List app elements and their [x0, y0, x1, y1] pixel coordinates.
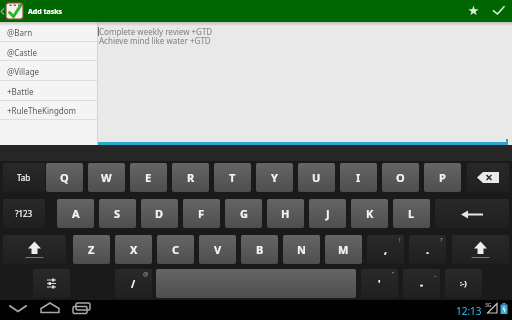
- staticText: :-): [460, 279, 467, 289]
- button[interactable]: D: [141, 199, 178, 228]
- button[interactable]: [156, 269, 356, 298]
- staticText: L: [408, 206, 415, 221]
- button[interactable]: @Village: [0, 61, 98, 81]
- staticText: D: [155, 206, 164, 221]
- staticText: ?: [440, 236, 443, 244]
- staticText: !: [399, 236, 401, 244]
- staticText: I: [356, 170, 361, 185]
- button[interactable]: +RuleTheKingdom: [0, 100, 98, 120]
- button[interactable]: [3, 235, 66, 264]
- button[interactable]: H: [267, 199, 304, 228]
- button[interactable]: I: [340, 163, 377, 192]
- button[interactable]: P: [424, 163, 461, 192]
- staticText: N: [297, 242, 306, 257]
- button[interactable]: .: [409, 235, 446, 264]
- staticText: H: [281, 206, 290, 221]
- staticText: ?123: [15, 208, 33, 219]
- button[interactable]: Y: [256, 163, 293, 192]
- button[interactable]: T: [214, 163, 251, 192]
- button[interactable]: V: [199, 235, 236, 264]
- staticText: ': [378, 277, 381, 291]
- button[interactable]: [4, 300, 32, 320]
- button[interactable]: R: [172, 163, 209, 192]
- button[interactable]: L: [393, 199, 430, 228]
- button[interactable]: [68, 300, 96, 320]
- button[interactable]: [467, 163, 509, 192]
- staticText: G: [240, 206, 248, 221]
- staticText: U: [312, 170, 321, 185]
- button[interactable]: J: [309, 199, 346, 228]
- button[interactable]: ?123: [3, 199, 45, 228]
- staticText: S: [114, 206, 121, 221]
- staticText: 12:13: [456, 304, 482, 318]
- staticText: K: [366, 206, 374, 221]
- staticText: @Castle: [7, 47, 38, 58]
- button[interactable]: /: [115, 269, 152, 298]
- staticText: E: [145, 170, 152, 185]
- staticText: J: [326, 206, 330, 221]
- button[interactable]: Tab: [3, 163, 45, 192]
- button[interactable]: ,: [367, 235, 404, 264]
- staticText: @Village: [7, 66, 40, 77]
- staticText: ": [392, 270, 395, 278]
- button[interactable]: @Castle: [0, 42, 98, 62]
- button[interactable]: F: [183, 199, 220, 228]
- staticText: P: [439, 170, 446, 185]
- staticText: /: [131, 277, 136, 291]
- button[interactable]: [435, 199, 509, 228]
- staticText: W: [101, 170, 112, 185]
- button[interactable]: +Battle: [0, 81, 98, 101]
- staticText: B: [256, 242, 264, 257]
- staticText: V: [214, 242, 222, 257]
- button[interactable]: C: [157, 235, 194, 264]
- staticText: _: [434, 270, 437, 278]
- staticText: Add tasks: [28, 7, 63, 17]
- button[interactable]: X: [115, 235, 152, 264]
- button[interactable]: [33, 269, 70, 298]
- button[interactable]: -: [403, 269, 440, 298]
- button[interactable]: U: [298, 163, 335, 192]
- staticText: Z: [88, 242, 95, 257]
- button[interactable]: K: [351, 199, 388, 228]
- button[interactable]: E: [130, 163, 167, 192]
- staticText: Tab: [17, 172, 31, 183]
- staticText: M: [338, 242, 349, 257]
- button[interactable]: N: [283, 235, 320, 264]
- button[interactable]: [452, 235, 509, 264]
- button[interactable]: ': [361, 269, 398, 298]
- staticText: Achieve mind like water +GTD: [99, 35, 211, 46]
- staticText: R: [187, 170, 195, 185]
- staticText: -: [420, 277, 424, 291]
- staticText: A: [72, 206, 80, 221]
- staticText: F: [198, 206, 205, 221]
- button[interactable]: [487, 0, 512, 22]
- staticText: X: [130, 242, 138, 257]
- button[interactable]: S: [99, 199, 136, 228]
- button[interactable]: [36, 300, 64, 320]
- staticText: 3G: [485, 302, 492, 309]
- staticText: Q: [60, 170, 69, 185]
- staticText: ,: [384, 242, 388, 257]
- staticText: C: [172, 242, 180, 257]
- staticText: Y: [271, 170, 278, 185]
- staticText: Complete weekly review +GTD: [99, 26, 213, 37]
- button[interactable]: :-): [445, 269, 482, 298]
- button[interactable]: G: [225, 199, 262, 228]
- button[interactable]: Q: [46, 163, 83, 192]
- staticText: .: [426, 242, 430, 257]
- button[interactable]: W: [88, 163, 125, 192]
- staticText: O: [396, 170, 405, 185]
- button[interactable]: A: [57, 199, 94, 228]
- button[interactable]: M: [325, 235, 362, 264]
- staticText: @: [143, 270, 149, 278]
- staticText: T: [229, 170, 236, 185]
- button[interactable]: O: [382, 163, 419, 192]
- button[interactable]: [461, 0, 486, 22]
- staticText: +RuleTheKingdom: [7, 105, 77, 116]
- button[interactable]: Z: [73, 235, 110, 264]
- button[interactable]: @Barn: [0, 22, 98, 42]
- staticText: +Battle: [7, 86, 34, 97]
- staticText: @Barn: [7, 27, 33, 38]
- button[interactable]: B: [241, 235, 278, 264]
